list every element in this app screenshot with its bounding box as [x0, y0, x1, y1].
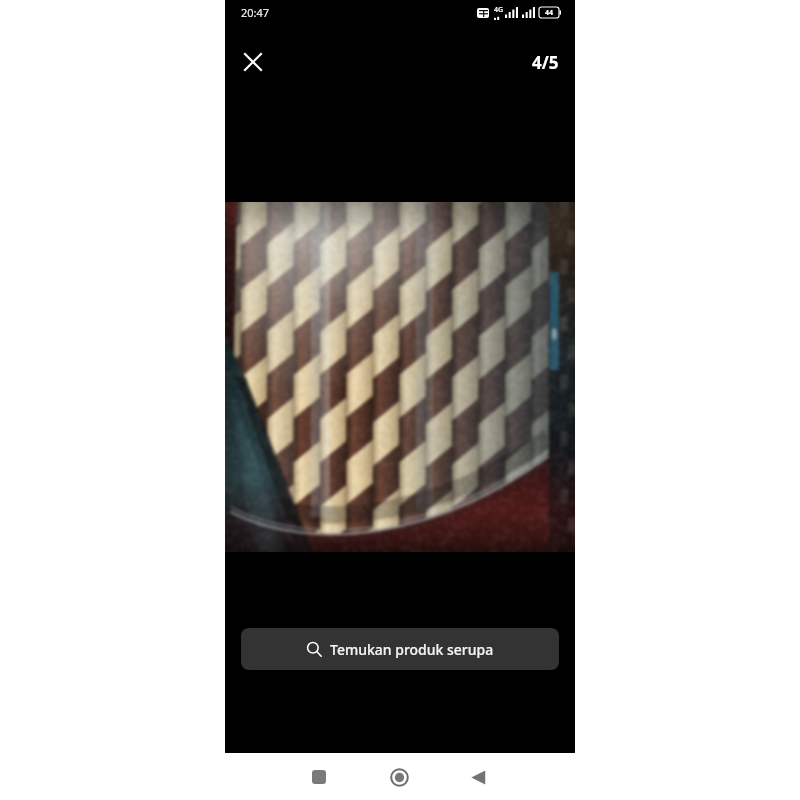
button[interactable]: Recent apps — [304, 762, 334, 792]
staticText: Temukan produk serupa — [330, 640, 494, 659]
staticText: 20:47 — [241, 5, 270, 20]
staticText: 4G — [494, 5, 504, 15]
button[interactable]: Back — [463, 762, 493, 792]
button[interactable]: Home — [384, 762, 414, 792]
button[interactable]: Close — [237, 46, 269, 78]
staticText: 44 — [545, 8, 554, 18]
staticText: 4/5 — [532, 51, 559, 74]
button[interactable]: Temukan produk serupa — [241, 628, 559, 670]
